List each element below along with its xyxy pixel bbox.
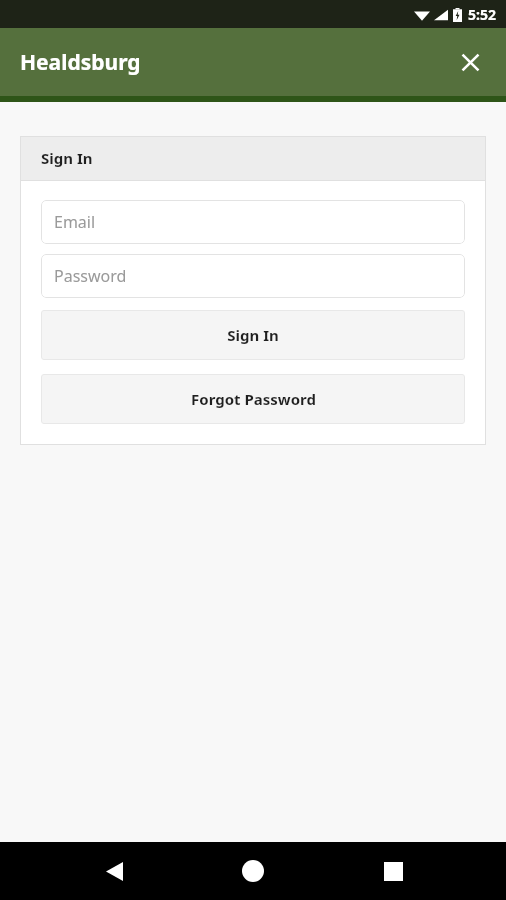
- staticText: Password: [54, 265, 127, 287]
- button[interactable]: Close: [448, 40, 492, 84]
- button[interactable]: Sign In: [41, 310, 465, 360]
- button[interactable]: Recent apps: [367, 845, 419, 897]
- button[interactable]: Forgot Password: [41, 374, 465, 424]
- staticText: Forgot Password: [191, 389, 316, 409]
- button[interactable]: Email: [41, 200, 465, 244]
- staticText: Email: [54, 211, 96, 233]
- staticText: Sign In: [41, 148, 93, 168]
- staticText: Healdsburg: [20, 48, 141, 77]
- button[interactable]: Password: [41, 254, 465, 298]
- button[interactable]: Back: [88, 845, 140, 897]
- staticText: Sign In: [227, 325, 279, 345]
- button[interactable]: Home: [227, 845, 279, 897]
- staticText: 5:52: [468, 5, 496, 24]
